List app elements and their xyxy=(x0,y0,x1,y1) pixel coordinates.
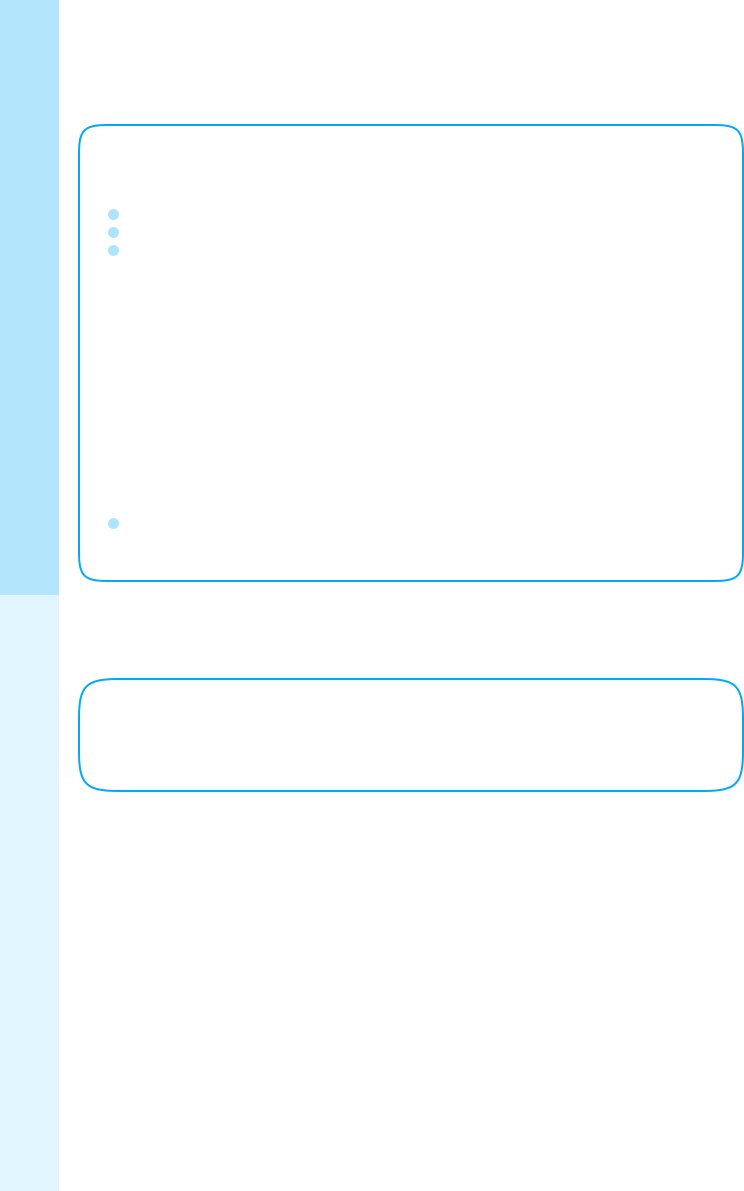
button[interactable]: Note footer xyxy=(79,679,743,791)
button[interactable]: Note body xyxy=(79,125,743,581)
